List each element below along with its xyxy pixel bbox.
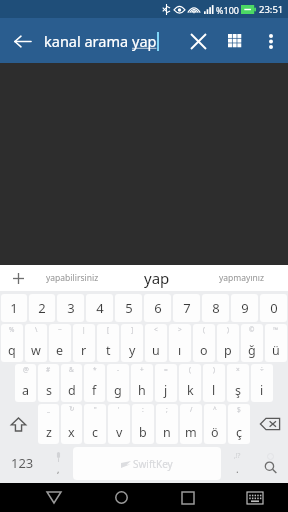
button[interactable]: 8 bbox=[202, 294, 229, 322]
staticText: ™ bbox=[273, 325, 279, 334]
staticText: r bbox=[81, 342, 87, 359]
staticText: n bbox=[163, 424, 171, 441]
staticText: " bbox=[94, 405, 97, 414]
staticText: j bbox=[164, 382, 168, 399]
button[interactable]: > bbox=[169, 324, 191, 362]
button[interactable]: Clear bbox=[180, 23, 216, 59]
button[interactable]: ( bbox=[193, 324, 215, 362]
staticText: @ bbox=[23, 365, 29, 374]
button[interactable]: yapabilirsiniz bbox=[30, 265, 114, 291]
button[interactable]: Voice input bbox=[44, 445, 72, 481]
staticText: 4 bbox=[96, 299, 104, 317]
button[interactable]: / bbox=[180, 404, 202, 444]
staticText: 5 bbox=[125, 299, 133, 317]
button[interactable]: ) bbox=[203, 364, 225, 402]
button[interactable]: : bbox=[132, 404, 154, 444]
button[interactable]: 7 bbox=[173, 294, 200, 322]
button[interactable]: % bbox=[1, 324, 23, 362]
button[interactable]: Search bbox=[252, 445, 288, 481]
button[interactable]: Backspace bbox=[251, 403, 288, 445]
button[interactable]: × bbox=[227, 364, 249, 402]
staticText: ~ bbox=[58, 325, 62, 334]
staticText: yap bbox=[144, 268, 170, 288]
button[interactable]: Keyboard bbox=[235, 483, 275, 512]
button[interactable]: 3 bbox=[57, 294, 84, 322]
button[interactable]: 5 bbox=[115, 294, 142, 322]
button[interactable]: Add word bbox=[9, 269, 27, 287]
staticText: # bbox=[46, 365, 51, 374]
button[interactable]: ' bbox=[108, 404, 130, 444]
staticText: 23:51 bbox=[259, 3, 284, 16]
staticText: ^ bbox=[213, 405, 217, 414]
button[interactable]: ] bbox=[121, 324, 143, 362]
button[interactable]: kanal arama bbox=[44, 31, 180, 51]
button[interactable]: ÷ bbox=[251, 364, 273, 402]
button[interactable]: = bbox=[155, 364, 177, 402]
button[interactable]: 2 bbox=[29, 294, 55, 322]
staticText: ,!? bbox=[234, 451, 241, 460]
button[interactable]: 6 bbox=[144, 294, 171, 322]
button[interactable]: \ bbox=[25, 324, 47, 362]
button[interactable]: yapmayınız bbox=[199, 265, 284, 291]
button[interactable]: " bbox=[84, 404, 106, 444]
button[interactable]: 123 bbox=[0, 445, 44, 481]
staticText: = bbox=[164, 365, 168, 374]
button[interactable]: ↻ bbox=[61, 404, 82, 444]
button[interactable]: Back bbox=[0, 19, 44, 63]
staticText: SwiftKey bbox=[133, 457, 173, 471]
staticText: ) bbox=[213, 365, 215, 374]
staticText: a bbox=[22, 382, 30, 399]
staticText: h bbox=[138, 382, 146, 399]
button[interactable]: Space bbox=[73, 447, 221, 480]
button[interactable]: © bbox=[241, 324, 263, 362]
button[interactable]: yap bbox=[114, 265, 199, 291]
staticText: kanal arama bbox=[44, 31, 132, 51]
button[interactable]: Shift bbox=[0, 403, 37, 445]
button[interactable]: 4 bbox=[86, 294, 113, 322]
button[interactable]: 1 bbox=[1, 294, 27, 322]
staticText: ; bbox=[166, 405, 168, 414]
staticText: > bbox=[178, 325, 182, 334]
staticText: 123 bbox=[11, 454, 34, 472]
button[interactable]: ~ bbox=[49, 324, 71, 362]
button[interactable]: # bbox=[38, 364, 59, 402]
staticText: l bbox=[212, 382, 216, 399]
button[interactable]: ( bbox=[179, 364, 201, 402]
staticText: 8 bbox=[212, 299, 220, 317]
button[interactable]: | bbox=[73, 324, 95, 362]
staticText: ö bbox=[211, 424, 219, 441]
button[interactable]: + bbox=[131, 364, 153, 402]
staticText: * bbox=[93, 365, 97, 374]
button[interactable]: 9 bbox=[231, 294, 258, 322]
button[interactable]: _ bbox=[38, 404, 59, 444]
button[interactable]: [ bbox=[97, 324, 119, 362]
staticText: ü bbox=[272, 342, 280, 359]
staticText: yapmayınız bbox=[219, 272, 265, 284]
staticText: v bbox=[116, 424, 123, 441]
staticText: 7 bbox=[183, 299, 191, 317]
button[interactable]: < bbox=[145, 324, 167, 362]
button[interactable]: ™ bbox=[265, 324, 287, 362]
staticText: : bbox=[142, 405, 144, 414]
staticText: ( bbox=[189, 365, 191, 374]
staticText: c bbox=[92, 424, 99, 441]
button[interactable]: * bbox=[84, 364, 105, 402]
button[interactable]: ,!? bbox=[222, 445, 252, 481]
button[interactable]: 0 bbox=[260, 294, 287, 322]
button[interactable]: @ bbox=[15, 364, 36, 402]
button[interactable]: Back bbox=[34, 483, 74, 512]
button[interactable]: Home bbox=[101, 483, 141, 512]
staticText: ç bbox=[236, 424, 243, 441]
button[interactable]: ; bbox=[156, 404, 178, 444]
button[interactable]: More options bbox=[254, 24, 288, 58]
staticText: + bbox=[140, 365, 144, 374]
button[interactable]: ^ bbox=[204, 404, 226, 444]
button[interactable]: & bbox=[61, 364, 82, 402]
button[interactable]: Apps bbox=[216, 22, 254, 60]
staticText: i bbox=[260, 382, 264, 399]
button[interactable]: - bbox=[107, 364, 129, 402]
button[interactable]: ) bbox=[217, 324, 239, 362]
staticText: ] bbox=[131, 325, 134, 334]
button[interactable]: $ bbox=[228, 404, 250, 444]
button[interactable]: Recents bbox=[168, 483, 208, 512]
